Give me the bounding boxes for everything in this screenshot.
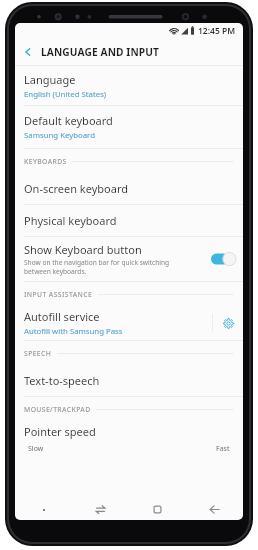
button[interactable]: Recents	[72, 499, 129, 520]
button[interactable]: Autofill service settings	[213, 306, 243, 340]
button[interactable]: Show Keyboard button toggle	[211, 252, 236, 266]
staticText: Show on the navigation bar for quick swi…	[24, 258, 170, 276]
staticText: Slow	[28, 444, 44, 454]
button[interactable]: On-screen keyboard	[15, 173, 243, 204]
button[interactable]: Default keyboard	[15, 106, 243, 148]
staticText: Autofill with Samsung Pass	[24, 326, 123, 337]
staticText: SPEECH	[24, 349, 52, 358]
button[interactable]: Back	[186, 499, 243, 520]
staticText: 12:45 PM	[198, 25, 236, 37]
button[interactable]: Language	[15, 66, 243, 105]
staticText: On-screen keyboard	[24, 181, 129, 196]
staticText: Default keyboard	[24, 113, 113, 128]
staticText: MOUSE/TRACKPAD	[24, 405, 91, 414]
button[interactable]: Indicator	[15, 499, 72, 520]
button[interactable]: Autofill service	[24, 306, 212, 340]
staticText: Autofill service	[24, 309, 100, 324]
staticText: KEYBOARDS	[24, 157, 67, 166]
staticText: Language	[24, 72, 76, 87]
staticText: Pointer speed	[24, 424, 96, 439]
staticText: Show Keyboard button	[24, 242, 142, 257]
button[interactable]: Physical keyboard	[15, 205, 243, 236]
button[interactable]: Home	[129, 499, 186, 520]
staticText: Text-to-speech	[24, 373, 100, 388]
button[interactable]: Pointer speed	[15, 421, 243, 454]
button[interactable]: Text-to-speech	[15, 365, 243, 396]
staticText: Fast	[216, 444, 230, 454]
staticText: Physical keyboard	[24, 213, 117, 228]
staticText: Samsung Keyboard	[24, 130, 95, 141]
staticText: LANGUAGE AND INPUT	[41, 45, 159, 59]
button[interactable]: Show Keyboard button	[15, 237, 243, 281]
staticText: English (United States)	[24, 89, 107, 100]
staticText: INPUT ASSISTANCE	[24, 290, 93, 299]
button[interactable]: Back	[15, 38, 41, 65]
